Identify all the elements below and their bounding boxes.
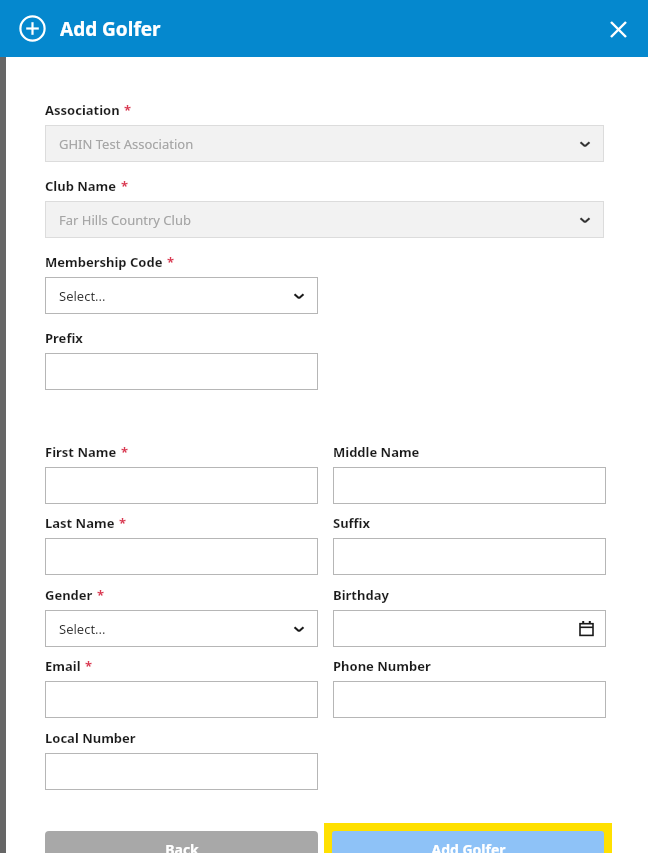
staticText: GHIN Test Association <box>59 135 194 153</box>
button[interactable]: Add Golfer <box>324 823 612 853</box>
staticText: * <box>121 177 129 195</box>
staticText: * <box>97 586 105 604</box>
button[interactable]: GHIN Test Association <box>45 125 604 162</box>
button[interactable]: Close <box>601 12 635 46</box>
staticText: First Name <box>45 443 117 461</box>
staticText: * <box>167 253 175 271</box>
staticText: Add Golfer <box>60 16 161 42</box>
staticText: Email <box>45 657 81 675</box>
staticText: * <box>119 514 127 532</box>
button[interactable] <box>45 353 318 390</box>
staticText: Add Golfer <box>431 840 506 853</box>
button[interactable] <box>45 467 318 504</box>
staticText: Phone Number <box>333 657 431 675</box>
staticText: Association <box>45 101 120 119</box>
staticText: Gender <box>45 586 93 604</box>
button[interactable] <box>333 681 606 718</box>
button[interactable] <box>45 681 318 718</box>
staticText: Last Name <box>45 514 115 532</box>
button[interactable] <box>333 467 606 504</box>
staticText: Suffix <box>333 514 371 532</box>
staticText: * <box>124 101 132 119</box>
button[interactable]: Select... <box>45 610 318 647</box>
staticText: Far Hills Country Club <box>59 211 191 229</box>
staticText: Back <box>165 840 199 853</box>
staticText: Prefix <box>45 329 83 347</box>
staticText: * <box>85 657 93 675</box>
button[interactable] <box>45 753 318 790</box>
staticText: Club Name <box>45 177 117 195</box>
staticText: Select... <box>59 620 106 638</box>
staticText: Middle Name <box>333 443 420 461</box>
staticText: Membership Code <box>45 253 163 271</box>
staticText: Local Number <box>45 729 136 747</box>
button[interactable] <box>45 538 318 575</box>
staticText: Select... <box>59 287 106 305</box>
button[interactable] <box>333 610 606 647</box>
button[interactable]: Far Hills Country Club <box>45 201 604 238</box>
button[interactable] <box>333 538 606 575</box>
button[interactable]: Select... <box>45 277 318 314</box>
staticText: * <box>121 443 129 461</box>
staticText: Birthday <box>333 586 389 604</box>
button[interactable]: Back <box>45 831 318 853</box>
